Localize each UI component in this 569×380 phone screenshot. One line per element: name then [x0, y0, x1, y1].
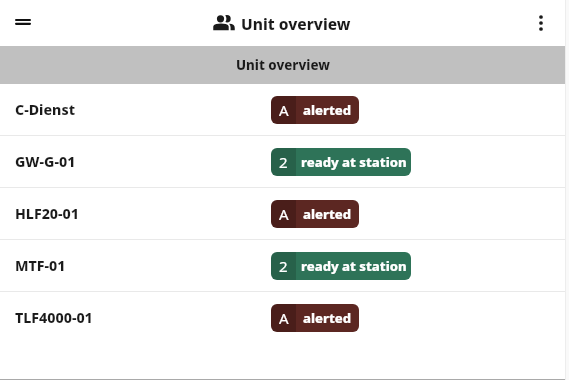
staticText: A	[279, 308, 289, 328]
staticText: MTF-01	[15, 256, 66, 275]
staticText: HLF20-01	[15, 204, 79, 223]
button[interactable]: Menu	[1, 1, 45, 45]
button[interactable]: C-Dienst	[0, 84, 565, 135]
staticText: TLF4000-01	[15, 308, 93, 327]
button[interactable]: HLF20-01	[0, 188, 565, 239]
staticText: A	[279, 100, 289, 120]
button[interactable]: GW-G-01	[0, 136, 565, 187]
staticText: ready at station	[301, 257, 407, 275]
button[interactable]: MTF-01	[0, 240, 565, 291]
button[interactable]: TLF4000-01	[0, 292, 565, 343]
staticText: alerted	[303, 101, 352, 119]
button[interactable]: More options	[519, 1, 563, 45]
staticText: alerted	[303, 309, 352, 327]
staticText: ready at station	[301, 153, 407, 171]
staticText: Unit overview	[241, 13, 351, 34]
staticText: A	[279, 204, 289, 224]
staticText: 2	[279, 152, 288, 172]
staticText: alerted	[303, 205, 352, 223]
staticText: C-Dienst	[15, 100, 75, 119]
staticText: 2	[279, 256, 288, 276]
staticText: GW-G-01	[15, 152, 76, 171]
staticText: Unit overview	[236, 56, 330, 74]
